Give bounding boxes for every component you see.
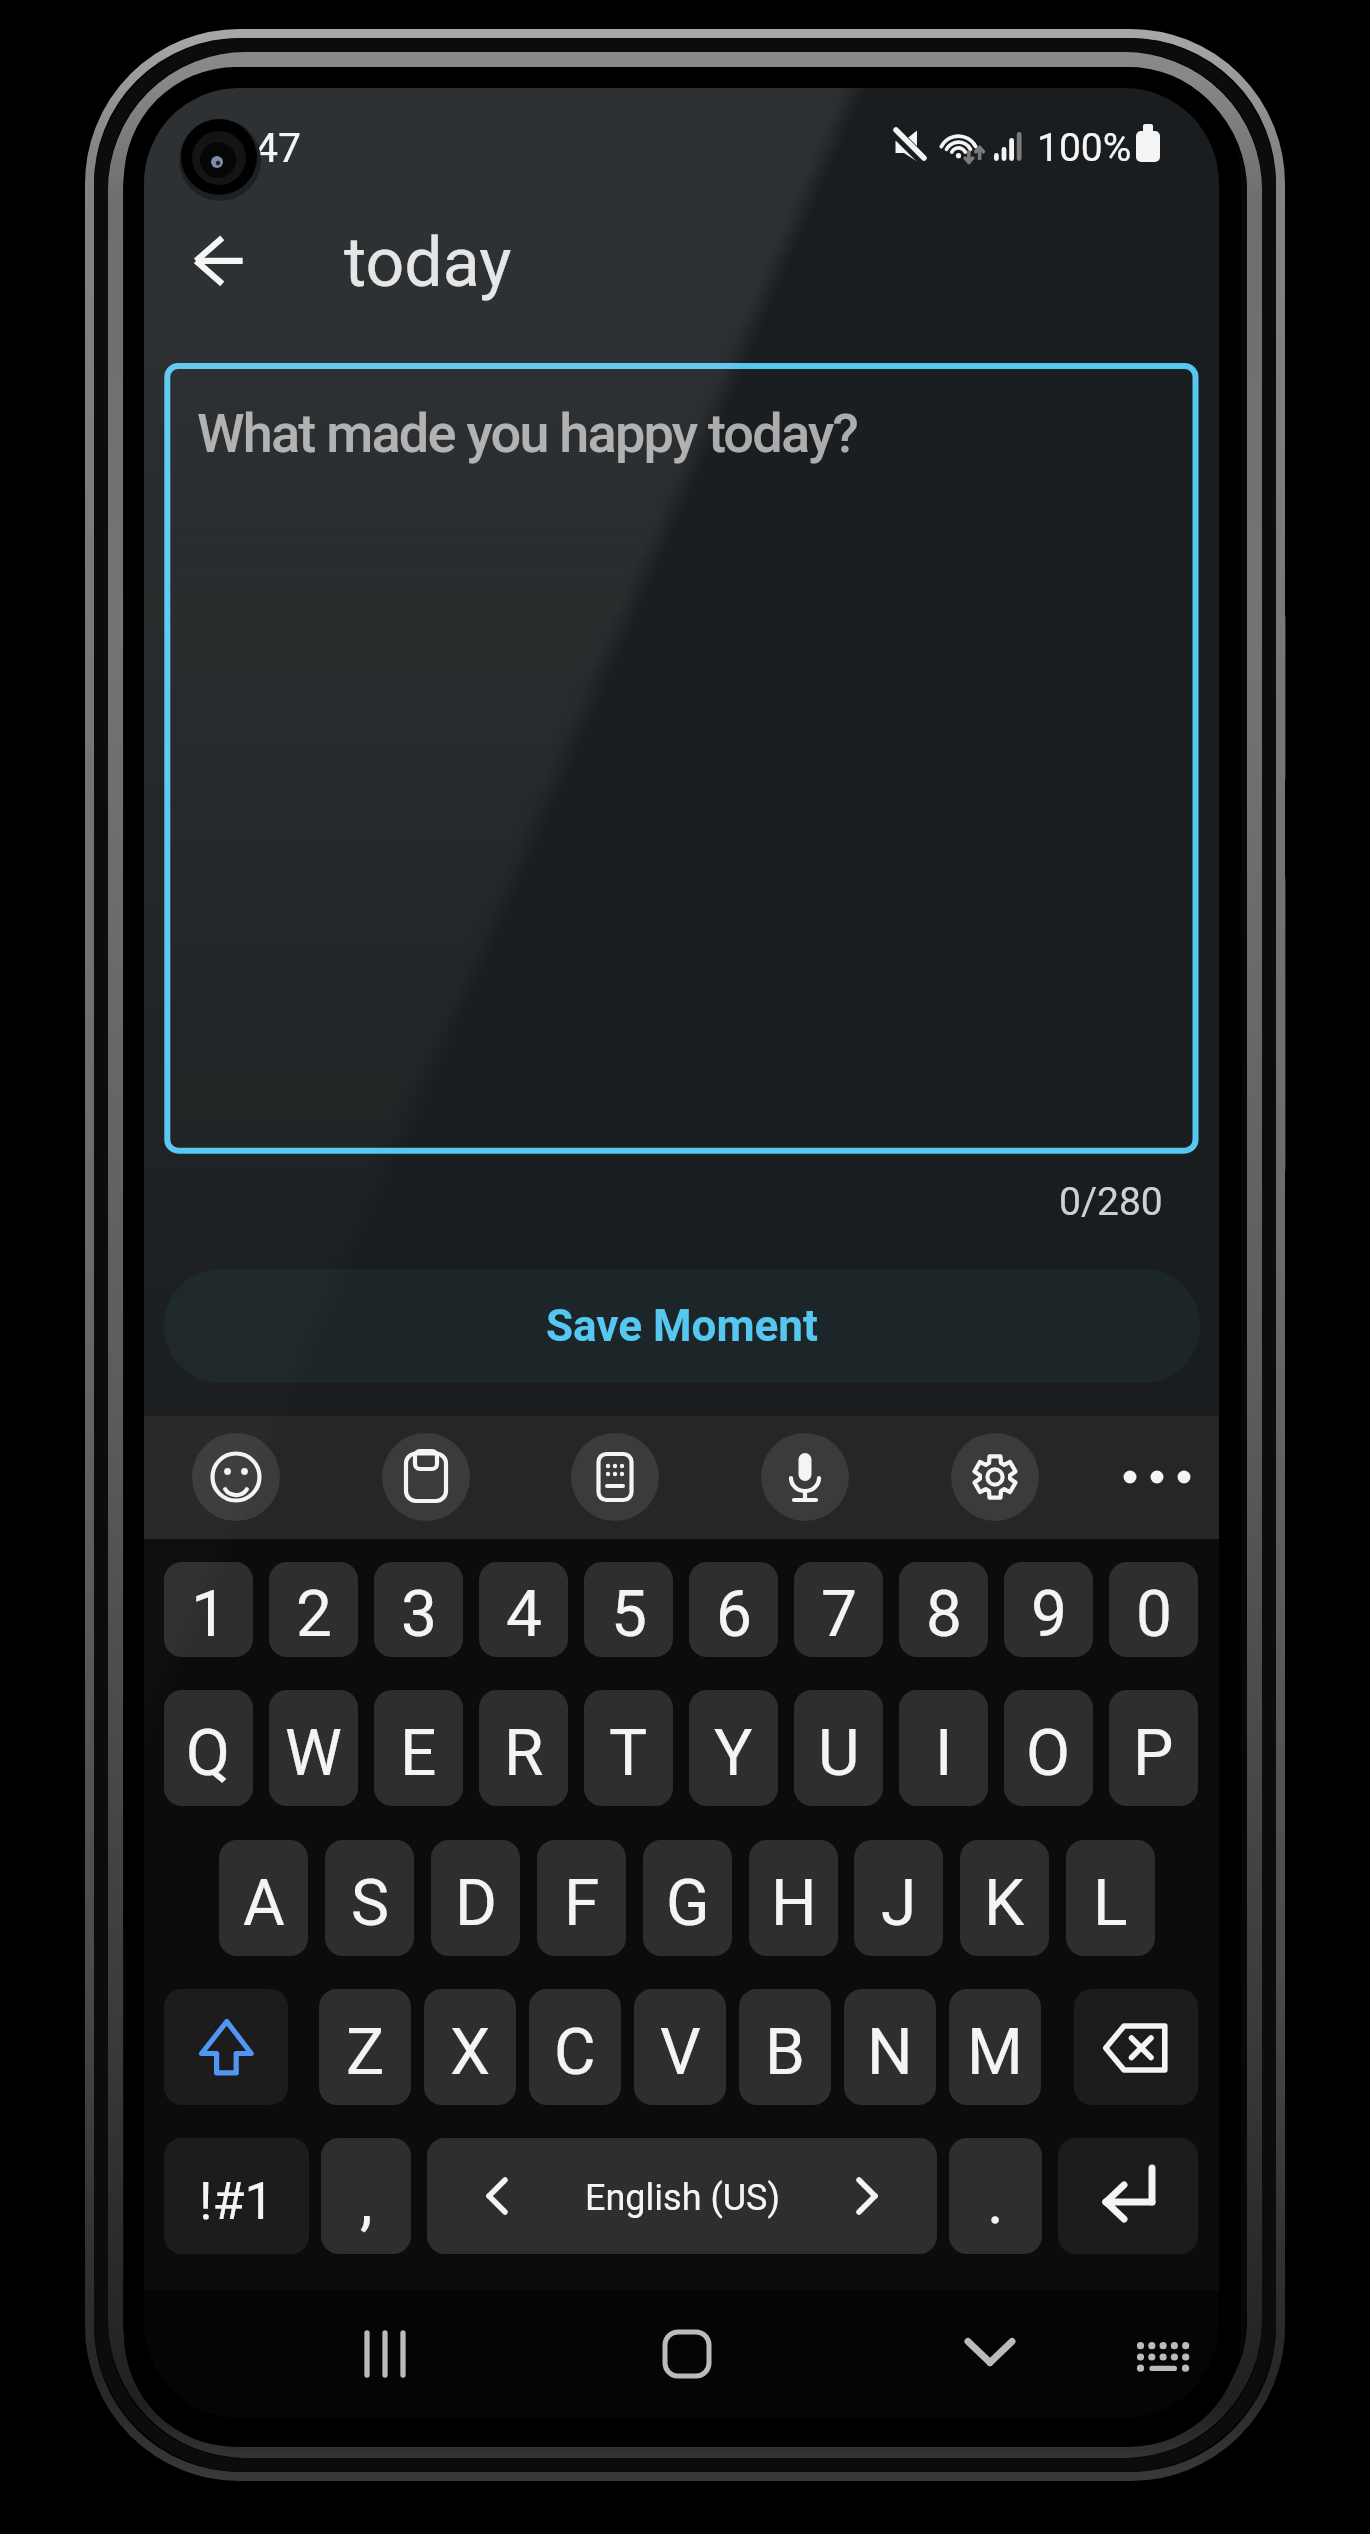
button[interactable]: More options — [1107, 1433, 1207, 1521]
button[interactable]: Enter — [1058, 2138, 1198, 2254]
button[interactable]: H — [749, 1840, 838, 1956]
button[interactable]: J — [854, 1840, 943, 1956]
button[interactable]: F — [537, 1840, 626, 1956]
staticText: B — [765, 2015, 805, 2090]
staticText: I — [935, 1716, 953, 1791]
staticText: 0/280 — [1059, 1179, 1163, 1225]
button[interactable]: V — [634, 1989, 726, 2105]
button[interactable]: G — [643, 1840, 732, 1956]
staticText: C — [554, 2015, 596, 2090]
button[interactable]: A — [219, 1840, 308, 1956]
button[interactable]: English (US) — [427, 2138, 937, 2254]
button[interactable]: I — [899, 1690, 988, 1806]
staticText: . — [987, 2164, 1004, 2239]
button[interactable]: L — [1066, 1840, 1155, 1956]
button[interactable]: M — [949, 1989, 1041, 2105]
staticText: Z — [346, 2015, 385, 2090]
staticText: E — [400, 1716, 437, 1791]
button[interactable]: C — [529, 1989, 621, 2105]
button[interactable]: W — [269, 1690, 358, 1806]
staticText: 5 — [611, 1577, 647, 1652]
staticText: A — [243, 1866, 285, 1941]
staticText: 9 — [1031, 1577, 1067, 1652]
staticText: What made you happy today? — [197, 402, 857, 465]
button[interactable]: Recent apps — [330, 2299, 440, 2409]
button[interactable]: P — [1109, 1690, 1198, 1806]
staticText: O — [1026, 1716, 1071, 1791]
staticText: 4 — [506, 1577, 542, 1652]
staticText: 100% — [1037, 125, 1132, 171]
staticText: W — [285, 1716, 342, 1791]
staticText: 3 — [401, 1577, 437, 1652]
button[interactable]: 9 — [1004, 1562, 1093, 1657]
button[interactable]: Z — [319, 1989, 411, 2105]
staticText: S — [351, 1866, 389, 1941]
staticText: K — [984, 1866, 1025, 1941]
button[interactable]: B — [739, 1989, 831, 2105]
button[interactable]: Switch keyboard — [1108, 2299, 1218, 2409]
staticText: H — [771, 1866, 817, 1941]
staticText: Y — [714, 1716, 753, 1791]
button[interactable]: K — [960, 1840, 1049, 1956]
button[interactable]: 1 — [164, 1562, 253, 1657]
staticText: V — [660, 2015, 701, 2090]
button[interactable]: Keyboard settings — [951, 1433, 1039, 1521]
button[interactable]: Hide keyboard — [935, 2299, 1045, 2409]
staticText: X — [450, 2015, 491, 2090]
button[interactable]: N — [844, 1989, 936, 2105]
staticText: !#1 — [199, 2171, 274, 2232]
button[interactable]: . — [949, 2138, 1042, 2254]
button[interactable]: T — [584, 1690, 673, 1806]
staticText: Save Moment — [546, 1300, 818, 1352]
button[interactable]: Back — [172, 215, 268, 311]
button[interactable]: D — [431, 1840, 520, 1956]
button[interactable]: 6 — [689, 1562, 778, 1657]
staticText: , — [360, 2164, 373, 2239]
button[interactable]: Keypad — [571, 1433, 659, 1521]
button[interactable]: 8 — [899, 1562, 988, 1657]
button[interactable] — [164, 363, 1198, 1154]
staticText: R — [504, 1716, 544, 1791]
button[interactable]: Clipboard — [382, 1433, 470, 1521]
button[interactable]: Voice input — [761, 1433, 849, 1521]
button[interactable]: S — [325, 1840, 414, 1956]
button[interactable]: 3 — [374, 1562, 463, 1657]
button[interactable]: 0 — [1109, 1562, 1198, 1657]
staticText: 2 — [296, 1577, 332, 1652]
button[interactable]: 2 — [269, 1562, 358, 1657]
button[interactable]: R — [479, 1690, 568, 1806]
staticText: 7 — [821, 1577, 857, 1652]
staticText: 1 — [191, 1577, 227, 1652]
staticText: U — [818, 1716, 860, 1791]
button[interactable]: Y — [689, 1690, 778, 1806]
button[interactable]: 7 — [794, 1562, 883, 1657]
button[interactable]: Q — [164, 1690, 253, 1806]
staticText: 0 — [1136, 1577, 1172, 1652]
button[interactable]: 5 — [584, 1562, 673, 1657]
staticText: L — [1093, 1866, 1128, 1941]
staticText: G — [666, 1866, 710, 1941]
button[interactable]: Home — [632, 2299, 742, 2409]
staticText: J — [881, 1866, 917, 1941]
button[interactable]: , — [321, 2138, 411, 2254]
button[interactable]: U — [794, 1690, 883, 1806]
button[interactable]: !#1 — [164, 2138, 309, 2254]
staticText: 6 — [716, 1577, 752, 1652]
staticText: 9:47 — [222, 124, 302, 172]
button[interactable]: E — [374, 1690, 463, 1806]
button[interactable]: Save Moment — [164, 1269, 1200, 1383]
button[interactable]: X — [424, 1989, 516, 2105]
staticText: English (US) — [585, 2177, 780, 2219]
button[interactable]: Emoji — [192, 1433, 280, 1521]
staticText: P — [1133, 1716, 1174, 1791]
staticText: 8 — [926, 1577, 962, 1652]
staticText: N — [867, 2015, 913, 2090]
button[interactable]: 4 — [479, 1562, 568, 1657]
button[interactable]: Shift — [164, 1989, 288, 2105]
staticText: today — [344, 223, 512, 303]
staticText: Q — [186, 1716, 231, 1791]
button[interactable]: Backspace — [1074, 1989, 1198, 2105]
staticText: T — [609, 1716, 648, 1791]
staticText: D — [455, 1866, 497, 1941]
button[interactable]: O — [1004, 1690, 1093, 1806]
